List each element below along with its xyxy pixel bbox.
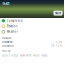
button[interactable]: Weather [0, 29, 64, 34]
staticText: 7.4 mi [53, 40, 62, 44]
button[interactable]: Start [53, 11, 63, 16]
staticText: Weather [7, 30, 18, 33]
staticText: NOTES [2, 49, 10, 52]
staticText: Start [55, 11, 61, 15]
staticText: DETAILS [2, 36, 11, 40]
staticText: Duration [2, 44, 14, 47]
staticText: Distance [2, 40, 13, 44]
staticText: 9:41 [2, 1, 9, 6]
staticText: Completed [7, 19, 23, 22]
button[interactable]: Elevation [0, 23, 64, 29]
button[interactable]: Completed [0, 18, 64, 23]
staticText: 3h 12m [51, 44, 62, 47]
staticText: Elevation [7, 24, 18, 28]
staticText: Quiet ridge walk with wide views. [2, 54, 48, 57]
